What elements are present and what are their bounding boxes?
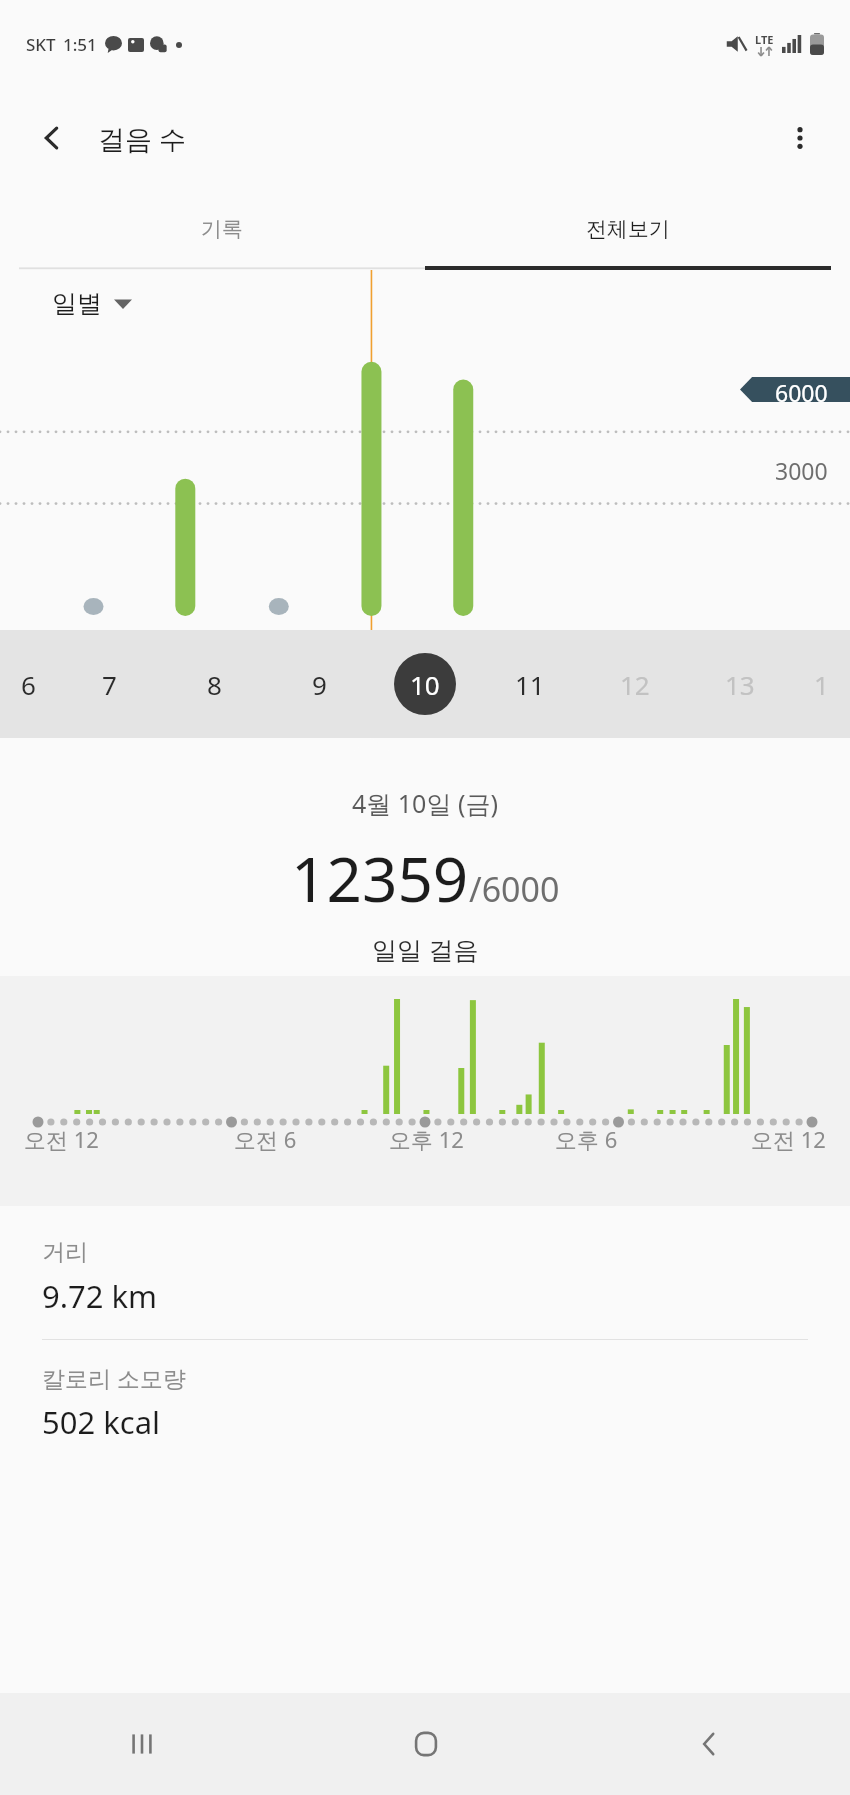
staticText: 기록 (201, 216, 243, 242)
staticText: 9 (312, 667, 327, 702)
staticText: 9.72 km (42, 1275, 158, 1317)
staticText: 오전 12 (24, 1124, 99, 1154)
button[interactable]: Back (567, 1693, 850, 1795)
staticText: 오전 6 (234, 1124, 297, 1154)
staticText: LTE (755, 32, 774, 47)
staticText: 1 (814, 667, 829, 702)
staticText: 전체보기 (586, 216, 670, 242)
staticText: 오후 6 (555, 1124, 618, 1154)
button[interactable]: 9 (267, 630, 372, 738)
staticText: 502 kcal (42, 1401, 161, 1443)
staticText: SKT (26, 33, 56, 56)
staticText: 12359 (291, 836, 469, 920)
staticText: 칼로리 소모량 (42, 1362, 186, 1393)
staticText: 13 (725, 667, 755, 702)
button[interactable]: 6 (0, 630, 57, 738)
staticText: 일별 (52, 288, 102, 319)
staticText: 3000 (775, 455, 828, 486)
button[interactable]: 기록 (19, 188, 425, 270)
staticText: 1:51 (63, 33, 97, 56)
staticText: 거리 (42, 1238, 88, 1267)
button[interactable]: 일별 (52, 288, 132, 319)
staticText: 오후 12 (389, 1124, 464, 1154)
button[interactable]: 칼로리 소모량 (0, 1340, 850, 1465)
staticText: 일일 걸음 (372, 932, 479, 966)
staticText: 6 (21, 667, 36, 702)
button[interactable]: 거리 (0, 1216, 850, 1340)
button[interactable]: 전체보기 (425, 188, 831, 270)
button[interactable]: Back (24, 110, 80, 166)
staticText: 11 (515, 667, 545, 702)
button[interactable]: Recent apps (0, 1693, 284, 1795)
button[interactable]: Home (284, 1693, 567, 1795)
button[interactable]: 13 (687, 630, 792, 738)
button[interactable]: 10 (372, 630, 477, 738)
button[interactable]: 7 (57, 630, 162, 738)
staticText: 8 (207, 667, 222, 702)
staticText: 오전 12 (751, 1124, 826, 1154)
button[interactable]: 8 (162, 630, 267, 738)
staticText: 10 (410, 667, 440, 702)
staticText: /6000 (469, 866, 560, 912)
button[interactable]: 11 (477, 630, 582, 738)
button[interactable]: 12 (582, 630, 687, 738)
staticText: 6000 (775, 377, 828, 408)
staticText: 12 (620, 667, 650, 702)
staticText: 걸음 수 (98, 120, 187, 157)
button[interactable]: More options (772, 110, 828, 166)
staticText: 7 (102, 667, 117, 702)
staticText: 4월 10일 (금) (352, 786, 498, 820)
